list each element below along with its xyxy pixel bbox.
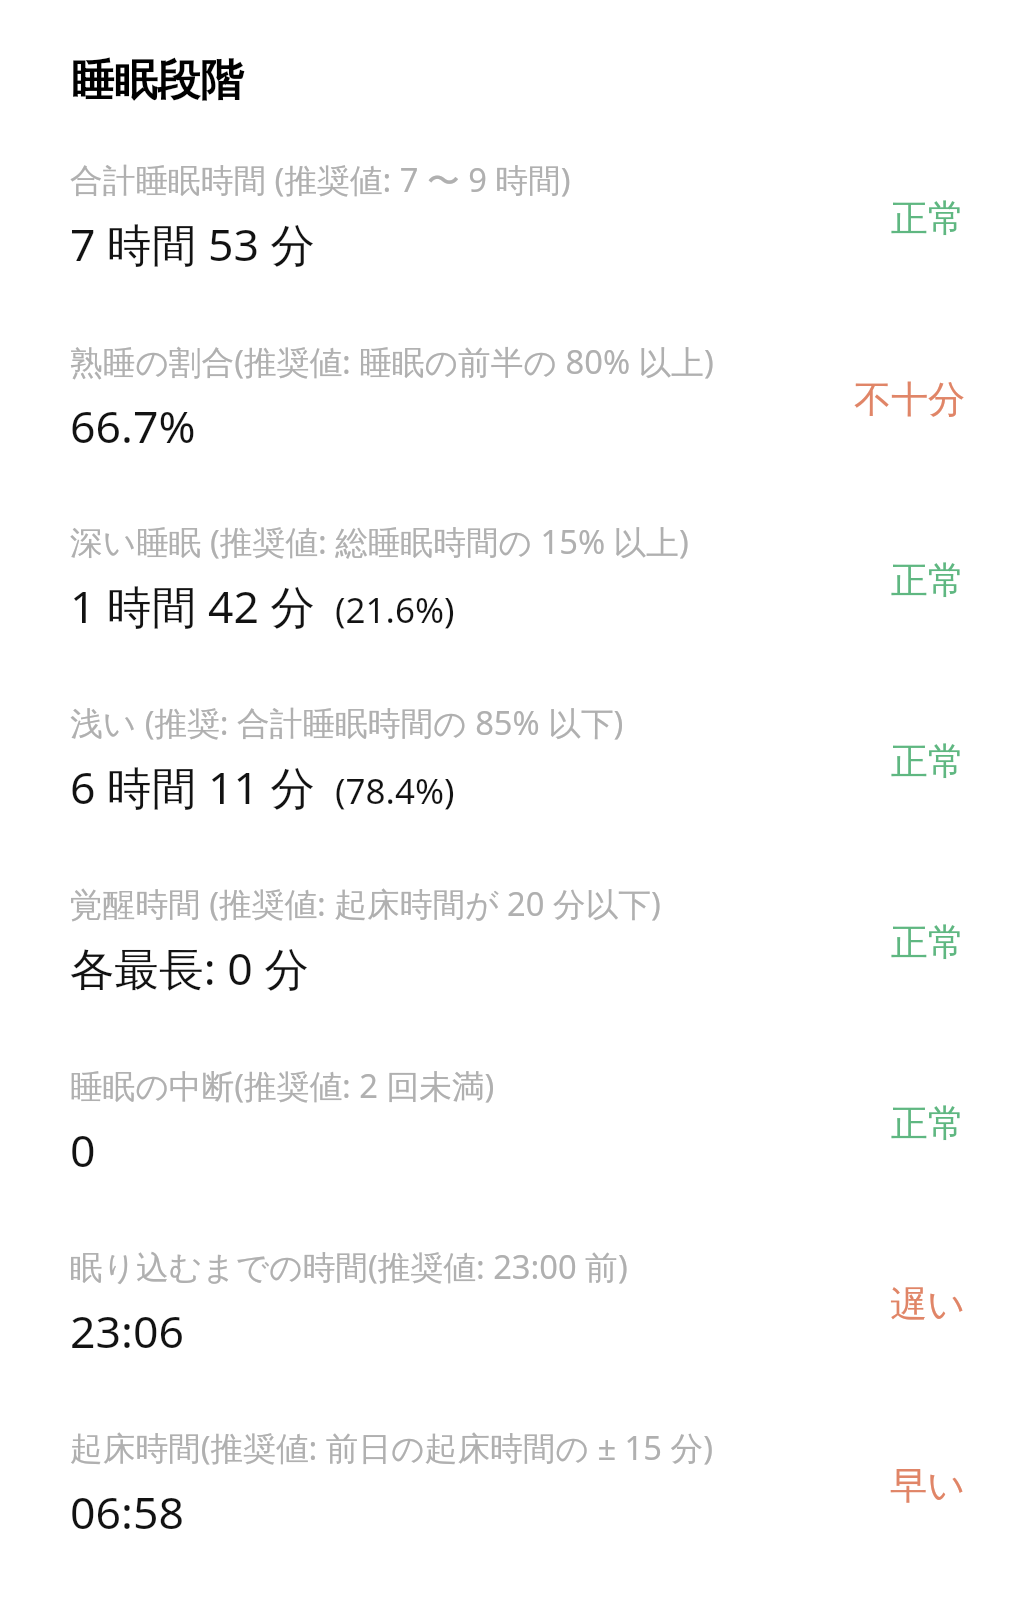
staticText: 各最長: 0 分 [70, 943, 310, 999]
staticText: 正常 [891, 741, 965, 785]
button[interactable]: 睡眠の中断(推奨値: 2 回未満) [0, 1030, 1033, 1211]
staticText: 深い睡眠 (推奨値: 総睡眠時間の 15% 以上) [70, 519, 689, 565]
staticText: 覚醒時間 (推奨値: 起床時間が 20 分以下) [70, 881, 661, 927]
staticText: 1 時間 42 分 [70, 581, 316, 637]
staticText: 正常 [891, 922, 965, 966]
button[interactable]: 合計睡眠時間 (推奨値: 7 〜 9 時間) [0, 125, 1033, 306]
staticText: 66.7% [70, 401, 196, 455]
staticText: 眠り込むまでの時間(推奨値: 23:00 前) [70, 1244, 628, 1290]
staticText: 7 時間 53 分 [70, 219, 316, 275]
staticText: 6 時間 11 分 [70, 762, 316, 818]
staticText: 06:58 [70, 1487, 184, 1541]
button[interactable]: 眠り込むまでの時間(推奨値: 23:00 前) [0, 1211, 1033, 1392]
staticText: 早い [890, 1465, 965, 1509]
staticText: 熟睡の割合(推奨値: 睡眠の前半の 80% 以上) [70, 339, 714, 385]
staticText: 0 [70, 1125, 96, 1179]
staticText: 不十分 [854, 379, 965, 423]
button[interactable]: 浅い (推奨: 合計睡眠時間の 85% 以下) [0, 668, 1033, 849]
button[interactable]: 熟睡の割合(推奨値: 睡眠の前半の 80% 以上) [0, 306, 1033, 487]
staticText: 正常 [891, 198, 965, 242]
button[interactable]: 覚醒時間 (推奨値: 起床時間が 20 分以下) [0, 849, 1033, 1030]
staticText: 正常 [891, 560, 965, 604]
button[interactable]: 深い睡眠 (推奨値: 総睡眠時間の 15% 以上) [0, 487, 1033, 668]
staticText: (78.4%) [335, 762, 455, 816]
staticText: 正常 [891, 1103, 965, 1147]
staticText: 23:06 [70, 1306, 184, 1360]
staticText: 起床時間(推奨値: 前日の起床時間の ± 15 分) [70, 1425, 713, 1471]
staticText: 浅い (推奨: 合計睡眠時間の 85% 以下) [70, 700, 624, 746]
button[interactable]: 起床時間(推奨値: 前日の起床時間の ± 15 分) [0, 1392, 1033, 1573]
staticText: 合計睡眠時間 (推奨値: 7 〜 9 時間) [70, 157, 571, 203]
staticText: (21.6%) [335, 581, 455, 635]
staticText: 睡眠の中断(推奨値: 2 回未満) [70, 1063, 495, 1109]
staticText: 睡眠段階 [71, 58, 243, 108]
staticText: 遅い [890, 1284, 965, 1328]
